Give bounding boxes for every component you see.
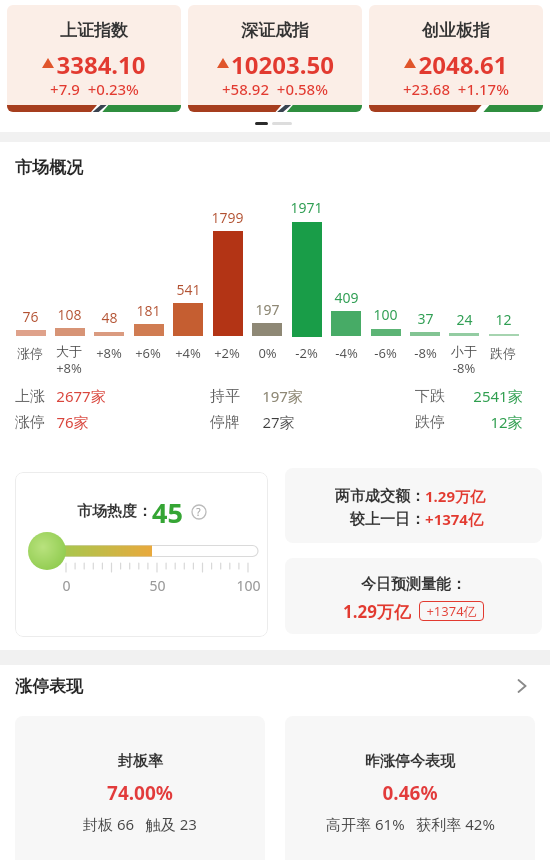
staticText: 2677家 — [56, 386, 106, 406]
staticText: 涨停 — [17, 345, 43, 361]
button[interactable]: 昨涨停今表现 — [285, 716, 535, 860]
staticText: 10203.50 — [231, 48, 334, 78]
staticText: 跌停 — [415, 413, 445, 432]
staticText: 封板率 — [118, 752, 163, 771]
staticText: 跌停 — [490, 345, 516, 361]
staticText: 197家 — [262, 386, 303, 406]
button[interactable]: 涨停表现 — [0, 672, 550, 700]
staticText: +58.92 +0.58% — [222, 79, 328, 99]
staticText: +7.9 +0.23% — [50, 79, 139, 99]
staticText: 12 — [495, 310, 512, 328]
staticText: 74.00% — [107, 780, 173, 806]
staticText: 1971 — [290, 198, 323, 216]
staticText: 409 — [334, 288, 359, 306]
button[interactable]: 今日预测量能： — [285, 558, 542, 634]
staticText: 涨停 — [15, 413, 45, 432]
staticText: 昨涨停今表现 — [365, 752, 455, 771]
staticText: +6% — [135, 344, 161, 362]
staticText: 3384.10 — [56, 48, 146, 78]
staticText: 24 — [456, 310, 473, 328]
staticText: 50 — [149, 576, 166, 595]
staticText: -2% — [295, 344, 318, 362]
staticText: 上涨 — [15, 387, 45, 406]
button[interactable]: 上证指数 — [7, 5, 181, 112]
staticText: 下跌 — [415, 387, 445, 406]
staticText: 创业板指 — [422, 20, 490, 41]
staticText: 小于 -8% — [451, 343, 477, 377]
button[interactable]: 深证成指 — [188, 5, 362, 112]
staticText: 76家 — [56, 412, 89, 432]
staticText: 48 — [101, 308, 118, 326]
staticText: -8% — [414, 344, 437, 362]
staticText: -6% — [374, 344, 397, 362]
button[interactable]: 封板率 — [15, 716, 265, 860]
staticText: 2541家 — [473, 386, 523, 406]
staticText: 181 — [136, 301, 161, 319]
staticText: 37 — [417, 309, 434, 327]
staticText: 较上一日： — [350, 510, 425, 529]
staticText: 上证指数 — [60, 20, 128, 41]
staticText: +2% — [214, 344, 240, 362]
staticText: 541 — [176, 280, 201, 298]
staticText: +1374亿 — [425, 509, 483, 529]
staticText: 市场热度： — [77, 502, 152, 521]
staticText: 1799 — [211, 208, 244, 226]
staticText: 今日预测量能： — [361, 575, 466, 594]
button[interactable]: 两市成交额： — [285, 468, 542, 543]
button[interactable]: 创业板指 — [369, 5, 543, 112]
staticText: 停牌 — [210, 413, 240, 432]
staticText: +8% — [96, 344, 122, 362]
staticText: 0.46% — [382, 780, 438, 806]
staticText: 1.29万亿 — [343, 600, 411, 622]
staticText: 27家 — [262, 412, 295, 432]
button[interactable]: 市场热度： — [15, 472, 268, 637]
staticText: 76 — [22, 307, 39, 325]
staticText: 市场概况 — [15, 157, 83, 178]
staticText: 100 — [373, 305, 398, 323]
staticText: -4% — [335, 344, 358, 362]
staticText: 2048.61 — [418, 48, 508, 78]
staticText: 两市成交额： — [335, 487, 425, 506]
staticText: 持平 — [210, 387, 240, 406]
staticText: 大于 +8% — [56, 343, 82, 377]
staticText: 108 — [57, 305, 82, 323]
staticText: 12家 — [490, 412, 523, 432]
staticText: 197 — [255, 300, 280, 318]
staticText: 0 — [62, 576, 71, 595]
staticText: 1.29万亿 — [425, 486, 485, 506]
staticText: 45 — [152, 494, 183, 528]
staticText: +23.68 +1.17% — [403, 79, 509, 99]
staticText: 封板 66 触及 23 — [83, 814, 197, 834]
staticText: 0% — [258, 344, 277, 362]
staticText: 高开率 61% 获利率 42% — [326, 814, 495, 834]
staticText: 涨停表现 — [15, 676, 83, 697]
staticText: ? — [196, 505, 201, 519]
staticText: +1374亿 — [426, 602, 477, 620]
staticText: +4% — [175, 344, 201, 362]
staticText: 深证成指 — [241, 20, 309, 41]
staticText: 100 — [236, 576, 261, 595]
